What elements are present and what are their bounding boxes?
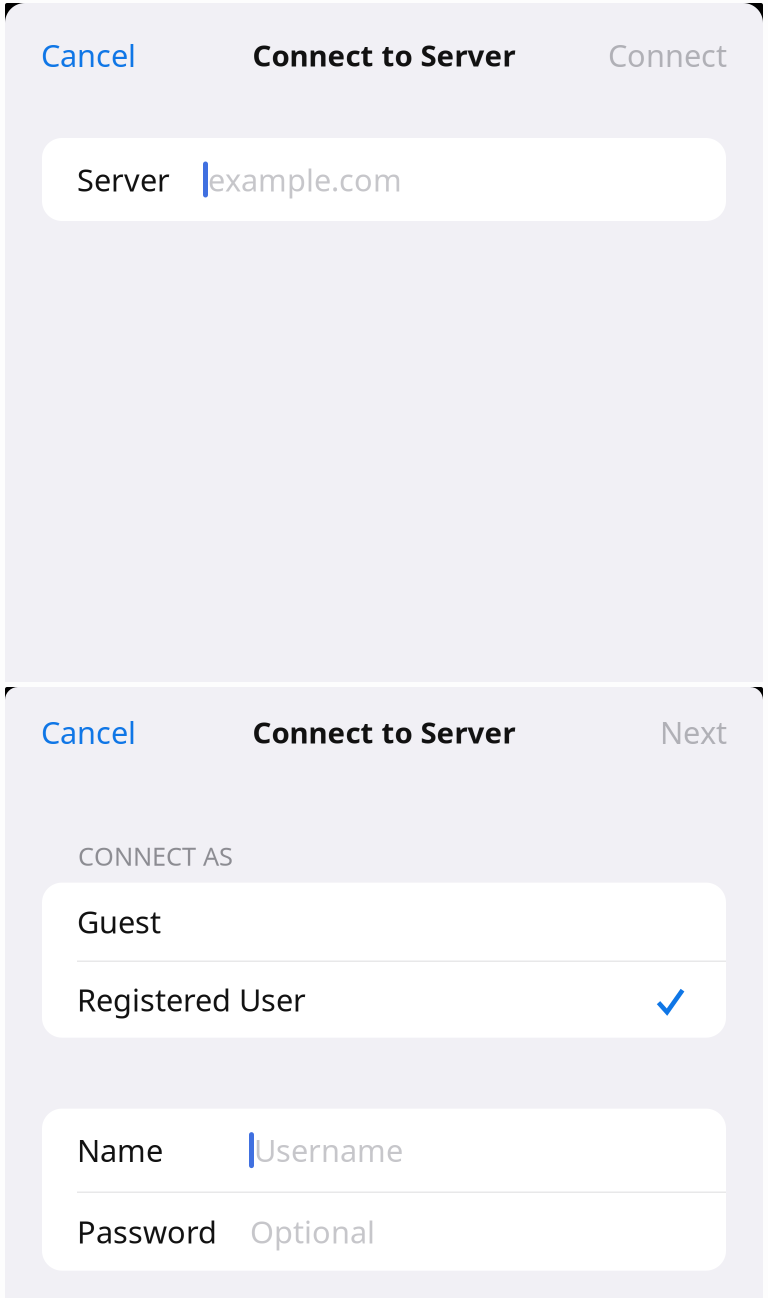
staticText: Server: [77, 159, 170, 200]
staticText: Username: [254, 1130, 403, 1170]
button[interactable]: Connect: [598, 26, 737, 84]
staticText: Password: [77, 1211, 217, 1252]
staticText: Name: [77, 1130, 163, 1170]
button[interactable]: Server: [42, 138, 726, 221]
staticText: Guest: [77, 901, 161, 942]
button[interactable]: Cancel: [31, 26, 146, 84]
staticText: Registered User: [77, 979, 306, 1020]
button[interactable]: Next: [650, 703, 737, 761]
button[interactable]: Guest: [42, 883, 726, 961]
button[interactable]: Registered User: [42, 962, 726, 1038]
staticText: Cancel: [41, 35, 136, 75]
staticText: Connect: [608, 35, 727, 75]
staticText: example.com: [208, 159, 402, 200]
button[interactable]: Password: [42, 1193, 726, 1271]
staticText: Optional: [250, 1211, 375, 1252]
staticText: Next: [660, 712, 727, 752]
button[interactable]: Name: [42, 1109, 726, 1192]
staticText: Connect to Server: [252, 712, 515, 751]
staticText: Connect to Server: [252, 35, 515, 74]
button[interactable]: Cancel: [31, 703, 146, 761]
staticText: CONNECT AS: [78, 839, 233, 873]
staticText: Cancel: [41, 712, 136, 752]
